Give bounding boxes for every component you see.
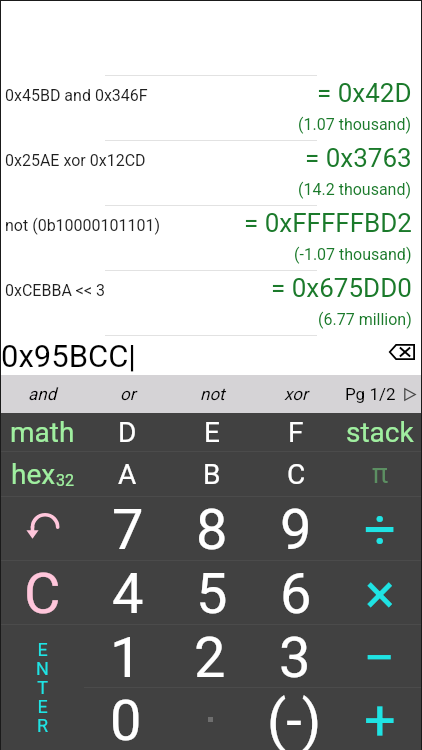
staticText: π (372, 458, 389, 490)
staticText: hex (11, 458, 56, 491)
button[interactable]: (-) (252, 688, 337, 750)
button[interactable]: not (0b10000101101) (0, 205, 422, 270)
staticText: = 0x3763 (305, 143, 412, 173)
staticText: + (364, 688, 396, 750)
staticText: 0x25AE xor 0x12CD (5, 151, 146, 170)
button[interactable]: 5 (170, 561, 254, 624)
button[interactable]: Pg 1/2 (338, 375, 422, 413)
button[interactable]: A (85, 452, 170, 496)
button[interactable]: 0xCEBBA << 3 (0, 270, 422, 335)
button[interactable]: xor (254, 375, 338, 413)
staticText: (14.2 thousand) (298, 180, 412, 199)
button[interactable]: + (337, 688, 422, 750)
button[interactable]: B (170, 452, 254, 496)
button[interactable]: 0x25AE xor 0x12CD (0, 140, 422, 205)
button[interactable]: Undo (0, 497, 85, 560)
button[interactable]: 9 (254, 497, 338, 560)
staticText: = 0x675DD0 (271, 273, 412, 303)
staticText: 5 (196, 561, 228, 624)
staticText: A (118, 458, 137, 491)
staticText: ÷ (364, 497, 396, 560)
staticText: 0x45BD and 0x346F (5, 86, 148, 105)
staticText: 0x95BCC| (1, 338, 136, 374)
staticText: 32 (56, 471, 74, 490)
staticText: and (28, 384, 57, 404)
button[interactable]: 4 (85, 561, 170, 624)
staticText: × (365, 561, 395, 624)
button[interactable]: hex (0, 452, 85, 496)
button[interactable]: Backspace (386, 341, 416, 363)
staticText: 4 (112, 561, 144, 624)
staticText: 0xCEBBA << 3 (5, 281, 106, 300)
button[interactable]: math (0, 413, 85, 451)
staticText: not (0b10000101101) (5, 216, 161, 235)
button[interactable]: 0x45BD and 0x346F (0, 75, 422, 140)
staticText: 2 (194, 625, 226, 687)
button[interactable]: C (0, 561, 85, 624)
button[interactable]: π (338, 452, 422, 496)
button[interactable]: 8 (170, 497, 254, 560)
button[interactable]: 7 (85, 497, 170, 560)
staticText: E (204, 416, 220, 449)
staticText: − (363, 625, 396, 687)
staticText: (-1.07 thousand) (294, 245, 412, 264)
staticText: C (24, 561, 61, 624)
button[interactable]: E N T E R (0, 625, 84, 750)
button[interactable]: C (254, 452, 338, 496)
staticText: 9 (280, 497, 312, 560)
staticText: 3 (279, 625, 311, 687)
staticText: = 0xFFFFFBD2 (244, 208, 412, 238)
button[interactable]: and (0, 375, 85, 413)
staticText: 0 (110, 688, 142, 750)
staticText: 6 (280, 561, 312, 624)
button[interactable]: 1 (84, 625, 168, 687)
staticText: math (10, 416, 75, 449)
staticText: or (120, 384, 136, 404)
button[interactable]: Decimal point (168, 688, 252, 750)
staticText: (-) (267, 688, 322, 750)
staticText: F (288, 416, 304, 449)
button[interactable]: or (85, 375, 170, 413)
button[interactable]: 2 (168, 625, 252, 687)
button[interactable]: ÷ (338, 497, 422, 560)
staticText: C (287, 458, 306, 491)
staticText: 7 (112, 497, 144, 560)
staticText: E N T E R (36, 639, 49, 736)
button[interactable]: E (170, 413, 254, 451)
staticText: 8 (196, 497, 228, 560)
button[interactable]: D (85, 413, 170, 451)
staticText: D (118, 416, 137, 449)
staticText: 1 (110, 625, 142, 687)
staticText: stack (346, 416, 414, 449)
staticText: Pg 1/2 (345, 384, 396, 404)
button[interactable]: 6 (254, 561, 338, 624)
button[interactable]: 0 (84, 688, 168, 750)
button[interactable]: not (170, 375, 254, 413)
staticText: (6.77 million) (318, 310, 412, 329)
staticText: = 0x42D (317, 78, 412, 108)
button[interactable]: × (338, 561, 422, 624)
button[interactable]: − (337, 625, 422, 687)
staticText: xor (284, 384, 308, 404)
button[interactable]: stack (338, 413, 422, 451)
staticText: not (200, 384, 225, 404)
button[interactable]: 3 (252, 625, 337, 687)
button[interactable]: F (254, 413, 338, 451)
staticText: (1.07 thousand) (298, 115, 412, 134)
staticText: B (203, 458, 221, 491)
